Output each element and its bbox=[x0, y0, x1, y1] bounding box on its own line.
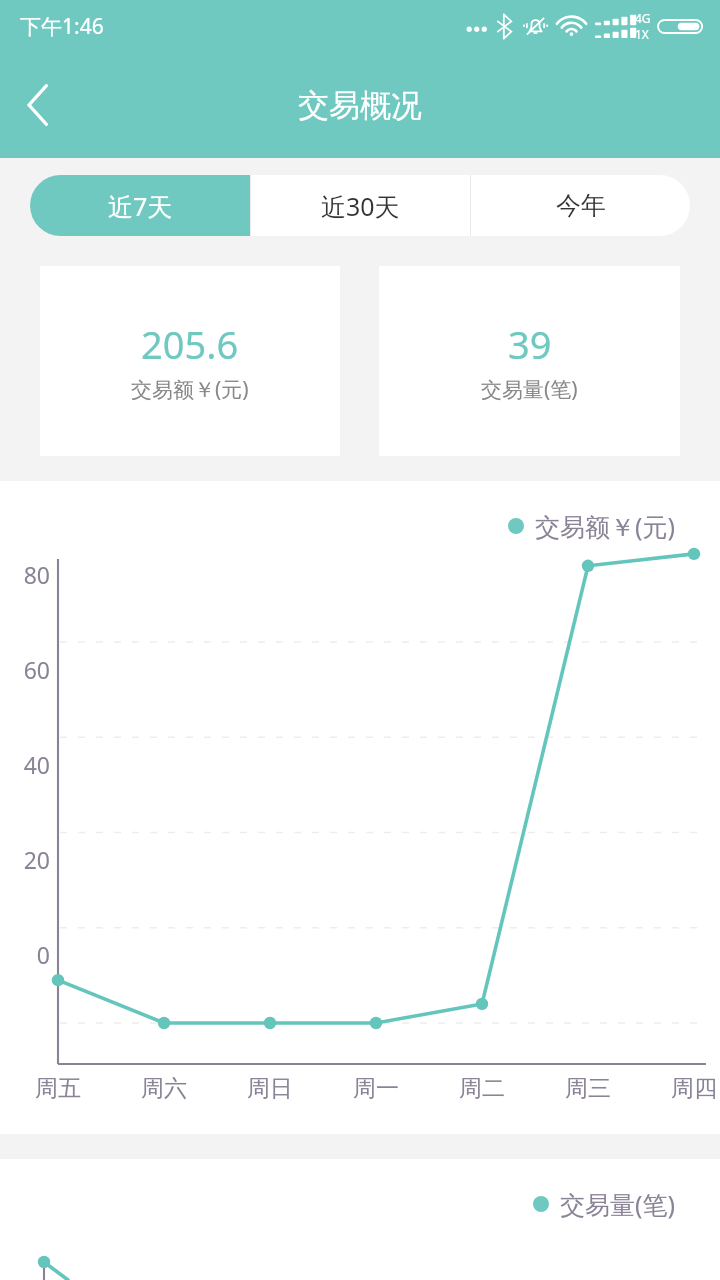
button[interactable]: 205.6 bbox=[40, 266, 340, 456]
button[interactable]: Back bbox=[0, 67, 76, 143]
staticText: 39 bbox=[508, 318, 552, 370]
button[interactable]: 今年 bbox=[471, 175, 690, 236]
button[interactable]: 交易量(笔) bbox=[533, 1187, 676, 1221]
staticText: 今年 bbox=[556, 190, 606, 221]
staticText: 交易额￥(元) bbox=[131, 375, 249, 404]
staticText: 周二 bbox=[453, 1074, 511, 1103]
button[interactable]: 39 bbox=[379, 266, 680, 456]
staticText: 60 bbox=[16, 654, 50, 685]
staticText: 1X bbox=[635, 26, 649, 42]
staticText: 周五 bbox=[29, 1074, 87, 1103]
staticText: 40 bbox=[16, 749, 50, 780]
staticText: 0 bbox=[16, 939, 50, 970]
button[interactable]: 近7天 bbox=[30, 175, 250, 236]
staticText: 近7天 bbox=[108, 189, 173, 223]
staticText: 下午1:46 bbox=[20, 12, 104, 41]
staticText: 近30天 bbox=[321, 189, 400, 223]
staticText: 80 bbox=[16, 559, 50, 590]
staticText: 周三 bbox=[559, 1074, 617, 1103]
staticText: 交易额￥(元) bbox=[535, 509, 676, 543]
button[interactable]: 交易额￥(元) bbox=[508, 509, 676, 543]
button[interactable]: 近30天 bbox=[251, 175, 470, 236]
staticText: 周六 bbox=[135, 1074, 193, 1103]
staticText: 20 bbox=[16, 844, 50, 875]
staticText: 交易量(笔) bbox=[560, 1187, 676, 1221]
staticText: 4G bbox=[635, 10, 651, 26]
staticText: 交易概况 bbox=[298, 86, 422, 125]
staticText: 周日 bbox=[241, 1074, 299, 1103]
staticText: 交易量(笔) bbox=[481, 375, 578, 404]
staticText: 周一 bbox=[347, 1074, 405, 1103]
staticText: 周四 bbox=[665, 1074, 720, 1103]
staticText: 205.6 bbox=[141, 318, 239, 370]
